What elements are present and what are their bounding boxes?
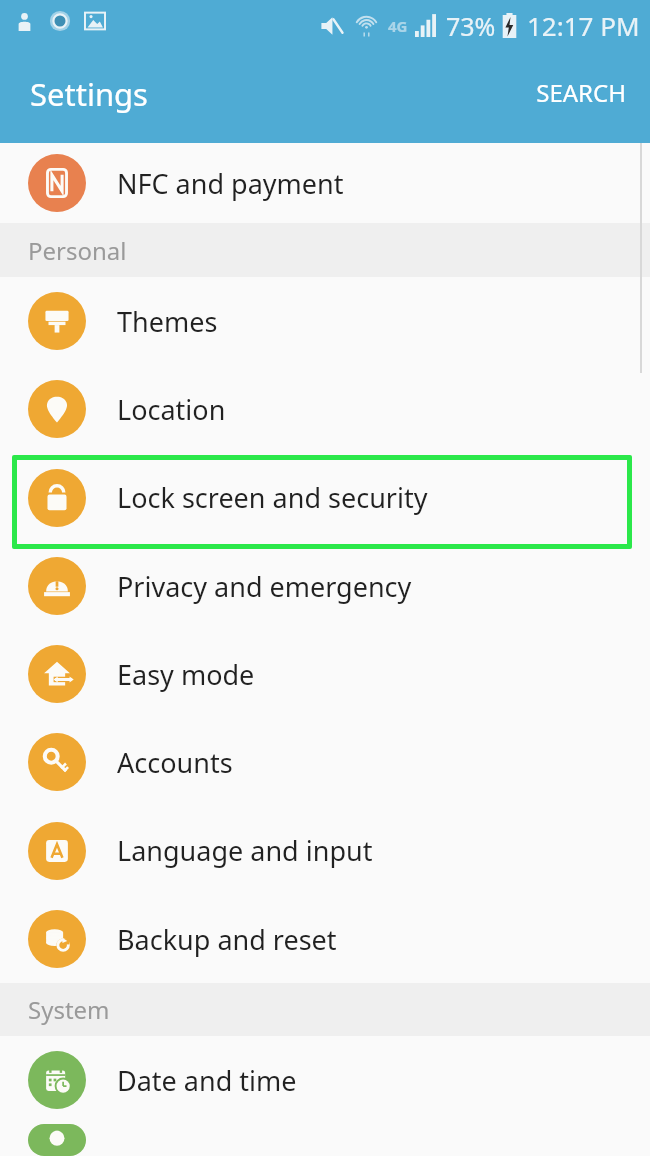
staticText: Location — [117, 391, 226, 428]
staticText: NFC and payment — [117, 165, 344, 202]
staticText: System — [28, 993, 110, 1026]
button[interactable]: Language and input — [0, 806, 650, 895]
staticText: Settings — [30, 73, 148, 115]
staticText: Lock screen and security — [117, 479, 428, 516]
staticText: Personal — [28, 234, 127, 267]
staticText: 4G — [388, 16, 408, 36]
button[interactable]: Easy mode — [0, 630, 650, 718]
button[interactable]: Themes — [0, 277, 650, 365]
staticText: SEARCH — [536, 76, 626, 109]
button[interactable]: Privacy and emergency — [0, 542, 650, 630]
button[interactable]: Location — [0, 365, 650, 453]
staticText: Backup and reset — [117, 921, 337, 958]
staticText: Date and time — [117, 1062, 297, 1099]
button[interactable]: Backup and reset — [0, 895, 650, 983]
staticText: 12:17 PM — [527, 8, 640, 43]
staticText: Privacy and emergency — [117, 568, 412, 605]
button[interactable] — [0, 1124, 650, 1156]
staticText: Easy mode — [117, 656, 255, 693]
button[interactable]: Date and time — [0, 1036, 650, 1124]
staticText: Accounts — [117, 744, 233, 781]
staticText: 73% — [446, 9, 496, 43]
staticText: Themes — [117, 303, 218, 340]
button[interactable]: Lock screen and security — [0, 453, 650, 542]
button[interactable]: SEARCH — [532, 72, 630, 113]
button[interactable]: NFC and payment — [0, 143, 650, 223]
button[interactable]: Accounts — [0, 718, 650, 806]
staticText: Language and input — [117, 832, 373, 869]
